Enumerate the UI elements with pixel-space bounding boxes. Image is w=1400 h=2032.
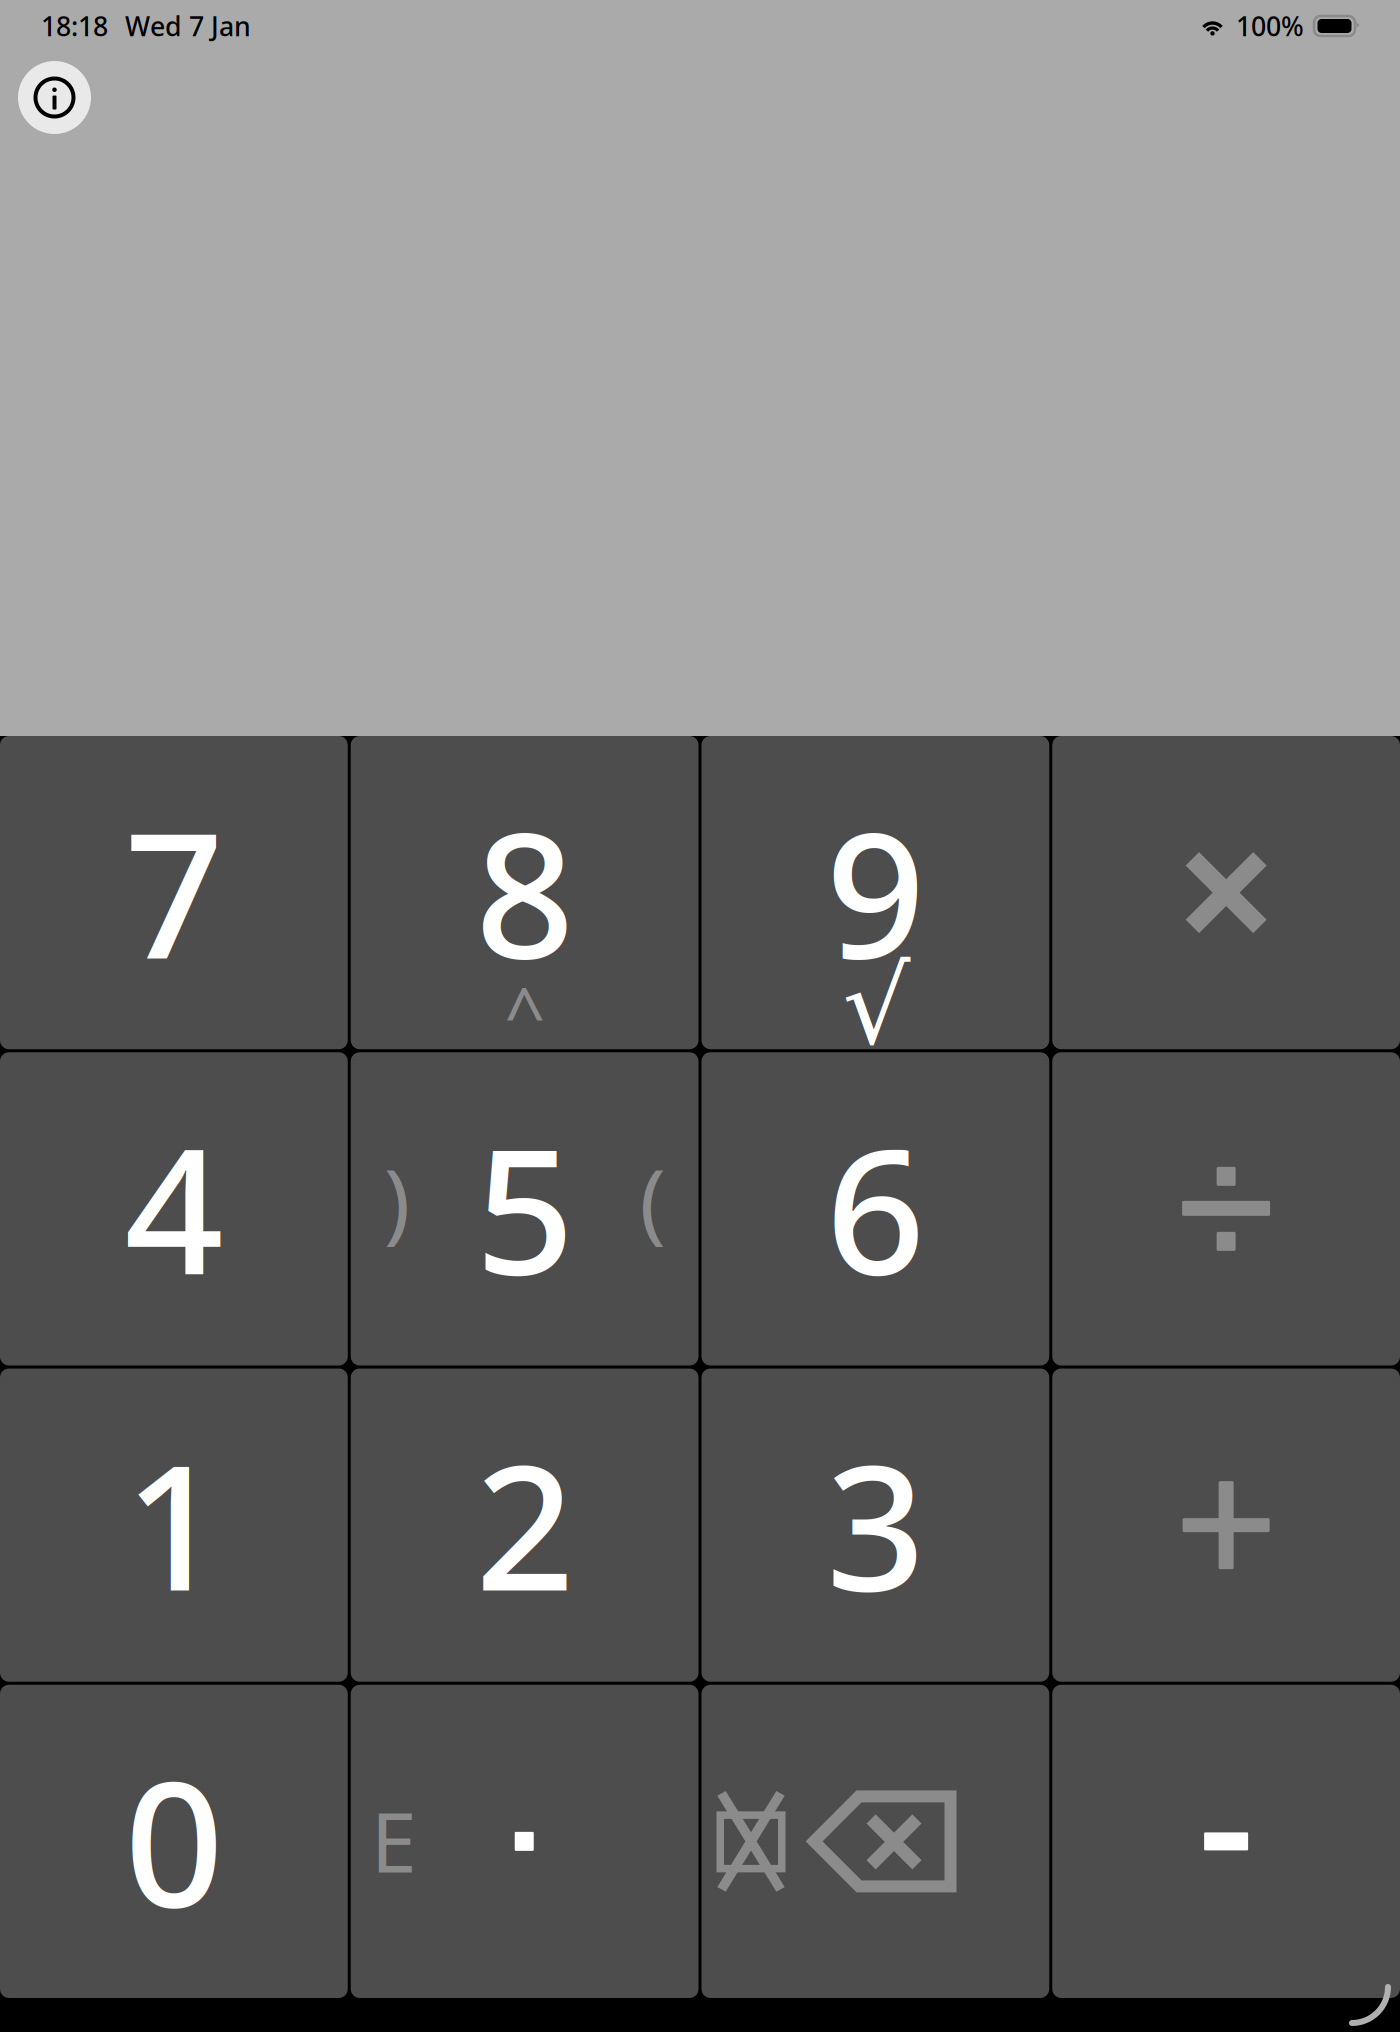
staticText: ) xyxy=(384,1140,410,1257)
button[interactable]: Clear and delete xyxy=(701,1685,1049,1998)
button[interactable]: Exponent and decimal point xyxy=(351,1685,699,1998)
button[interactable]: Multiply xyxy=(1052,736,1400,1049)
staticText: √ xyxy=(842,946,910,1067)
staticText: 9 xyxy=(826,775,925,1006)
button[interactable]: Minus xyxy=(1052,1685,1400,1998)
staticText: 1 xyxy=(124,1408,223,1638)
staticText: 18:18 xyxy=(41,8,108,44)
button[interactable]: 7 xyxy=(0,736,348,1049)
button[interactable]: 6 xyxy=(701,1052,1049,1365)
button[interactable]: Plus xyxy=(1052,1368,1400,1682)
staticText: 8 xyxy=(475,775,574,1006)
staticText: 100% xyxy=(1236,8,1304,44)
staticText: ^ xyxy=(504,964,545,1059)
staticText: 4 xyxy=(124,1092,223,1322)
button[interactable]: 4 xyxy=(0,1052,348,1365)
button[interactable]: 0 xyxy=(0,1685,348,1998)
button[interactable]: 2 xyxy=(351,1368,699,1682)
staticText: E xyxy=(371,1785,417,1895)
staticText: 7 xyxy=(124,775,223,1006)
button[interactable]: 9 xyxy=(701,736,1049,1049)
staticText: 5 xyxy=(475,1092,574,1322)
staticText: ( xyxy=(639,1140,665,1257)
staticText: 0 xyxy=(124,1724,223,1954)
staticText: Wed 7 Jan xyxy=(125,8,251,44)
staticText: 6 xyxy=(826,1092,925,1322)
staticText: 2 xyxy=(475,1408,574,1638)
staticText: 3 xyxy=(826,1408,925,1638)
button[interactable]: Divide xyxy=(1052,1052,1400,1365)
button[interactable]: 1 xyxy=(0,1368,348,1682)
button[interactable]: Info xyxy=(9,52,100,143)
button[interactable]: 8 xyxy=(351,736,699,1049)
button[interactable]: 5 xyxy=(351,1052,699,1365)
button[interactable]: 3 xyxy=(701,1368,1049,1682)
